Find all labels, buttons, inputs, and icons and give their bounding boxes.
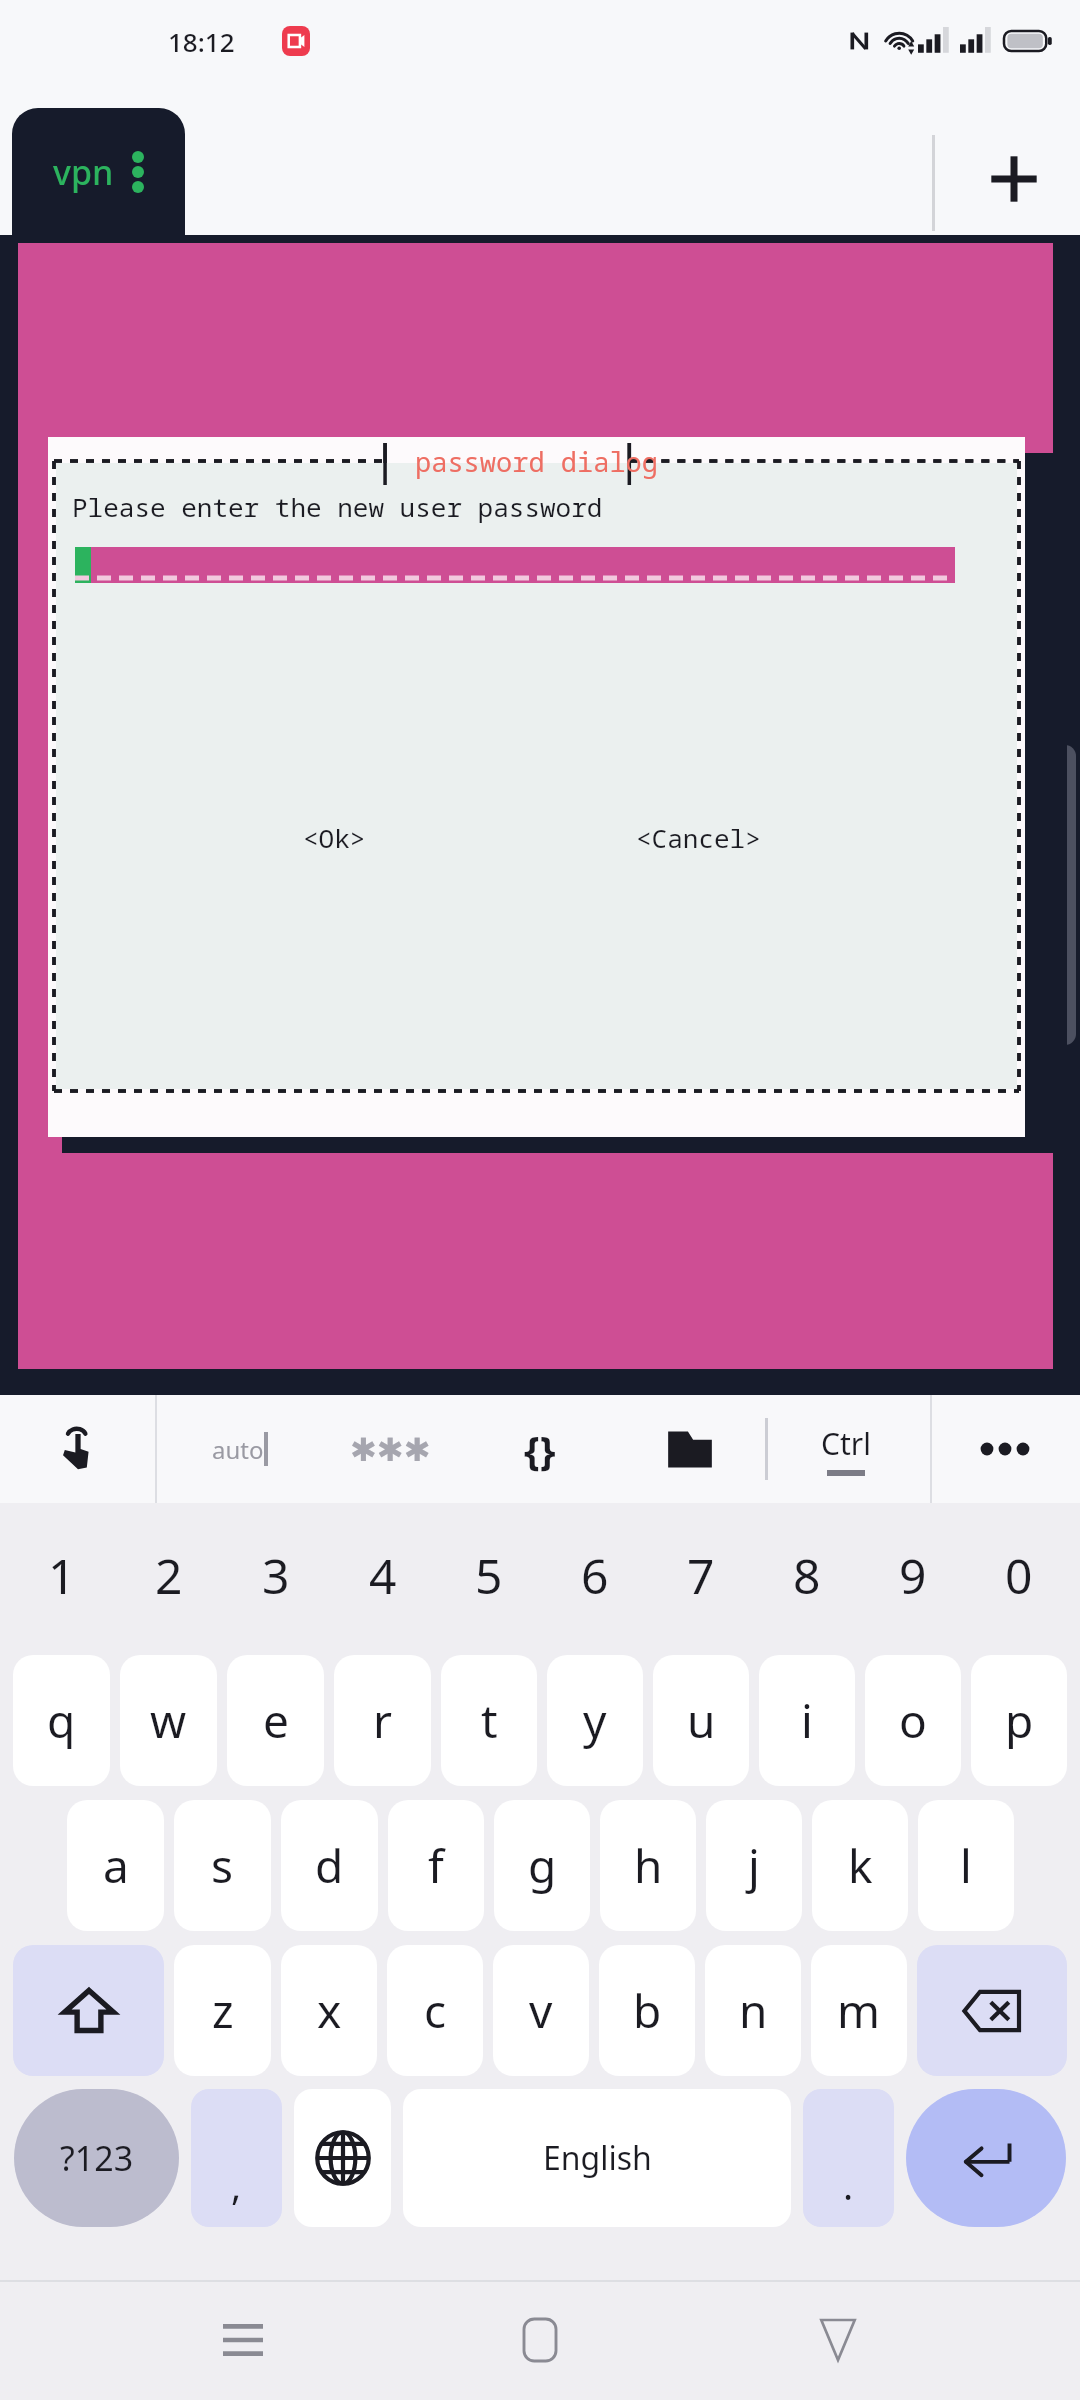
- button[interactable]: r: [334, 1655, 431, 1786]
- staticText: Ctrl: [821, 1423, 871, 1464]
- staticText: y: [583, 1689, 607, 1752]
- staticText: g: [528, 1834, 557, 1897]
- button[interactable]: Home: [485, 2285, 595, 2395]
- button[interactable]: 3: [222, 1503, 329, 1648]
- button[interactable]: 5: [436, 1503, 542, 1648]
- staticText: 3: [262, 1543, 290, 1608]
- button[interactable]: Backspace: [917, 1945, 1067, 2076]
- button[interactable]: c: [387, 1945, 483, 2076]
- button[interactable]: v: [493, 1945, 589, 2076]
- button[interactable]: Recent apps: [188, 2285, 298, 2395]
- button[interactable]: x: [281, 1945, 377, 2076]
- staticText: x: [317, 1979, 342, 2042]
- staticText: <Cancel>: [636, 820, 761, 855]
- button[interactable]: p: [971, 1655, 1067, 1786]
- staticText: e: [263, 1689, 289, 1752]
- button[interactable]: vpn: [12, 108, 185, 235]
- staticText: auto: [212, 1433, 264, 1466]
- staticText: 1: [48, 1543, 76, 1608]
- button[interactable]: auto: [165, 1395, 315, 1503]
- staticText: {}: [524, 1422, 556, 1476]
- staticText: u: [687, 1689, 716, 1752]
- button[interactable]: a: [67, 1800, 164, 1931]
- button[interactable]: 8: [754, 1503, 860, 1648]
- button[interactable]: <Ok>: [303, 820, 366, 855]
- button[interactable]: Back: [783, 2285, 893, 2395]
- button[interactable]: 6: [542, 1503, 648, 1648]
- button[interactable]: 7: [648, 1503, 754, 1648]
- staticText: ,: [231, 2159, 242, 2211]
- staticText: n: [739, 1979, 768, 2042]
- button[interactable]: q: [13, 1655, 110, 1786]
- staticText: English: [543, 2136, 652, 2180]
- button[interactable]: 2: [115, 1503, 222, 1648]
- staticText: a: [103, 1834, 129, 1897]
- button[interactable]: i: [759, 1655, 855, 1786]
- button[interactable]: z: [174, 1945, 271, 2076]
- staticText: m: [837, 1979, 881, 2042]
- staticText: p: [1005, 1689, 1034, 1752]
- button[interactable]: 1: [8, 1503, 115, 1648]
- button[interactable]: More options: [930, 1395, 1080, 1503]
- staticText: ?123: [60, 2135, 134, 2181]
- button[interactable]: j: [706, 1800, 802, 1931]
- button[interactable]: Shift: [13, 1945, 164, 2076]
- staticText: 4: [369, 1543, 397, 1608]
- staticText: w: [150, 1689, 187, 1752]
- staticText: .: [843, 2159, 854, 2211]
- button[interactable]: g: [494, 1800, 590, 1931]
- button[interactable]: ,: [191, 2089, 282, 2227]
- staticText: z: [212, 1979, 234, 2042]
- button[interactable]: n: [705, 1945, 801, 2076]
- staticText: f: [428, 1834, 444, 1897]
- button[interactable]: u: [653, 1655, 749, 1786]
- button[interactable]: 4: [329, 1503, 436, 1648]
- button[interactable]: Change language: [294, 2089, 391, 2227]
- staticText: 7: [687, 1543, 715, 1608]
- staticText: 5: [475, 1543, 503, 1608]
- button[interactable]: k: [812, 1800, 908, 1931]
- staticText: o: [899, 1689, 927, 1752]
- button[interactable]: y: [547, 1655, 643, 1786]
- button[interactable]: ?123: [14, 2089, 179, 2227]
- staticText: i: [801, 1689, 813, 1752]
- button[interactable]: <Cancel>: [636, 820, 761, 855]
- button[interactable]: m: [811, 1945, 907, 2076]
- button[interactable]: o: [865, 1655, 961, 1786]
- staticText: r: [373, 1689, 392, 1752]
- button[interactable]: l: [918, 1800, 1014, 1931]
- staticText: 9: [899, 1543, 927, 1608]
- staticText: 0: [1005, 1543, 1033, 1608]
- button[interactable]: Touch mode: [0, 1395, 155, 1503]
- button[interactable]: English: [403, 2089, 791, 2227]
- staticText: j: [748, 1834, 760, 1897]
- staticText: 2: [155, 1543, 183, 1608]
- button[interactable]: s: [174, 1800, 271, 1931]
- button[interactable]: .: [803, 2089, 894, 2227]
- staticText: l: [960, 1834, 972, 1897]
- button[interactable]: t: [441, 1655, 537, 1786]
- button[interactable]: Ctrl: [768, 1395, 923, 1503]
- button[interactable]: 0: [966, 1503, 1072, 1648]
- button[interactable]: Braces: [465, 1395, 615, 1503]
- staticText: d: [315, 1834, 344, 1897]
- button[interactable]: Files: [615, 1395, 765, 1503]
- staticText: 18:12: [168, 24, 235, 59]
- staticText: b: [633, 1979, 662, 2042]
- button[interactable]: Password: [315, 1395, 465, 1503]
- button[interactable]: b: [599, 1945, 695, 2076]
- button[interactable]: w: [120, 1655, 217, 1786]
- button[interactable]: 9: [860, 1503, 966, 1648]
- staticText: 6: [581, 1543, 609, 1608]
- staticText: ✱✱✱: [350, 1431, 431, 1468]
- button[interactable]: Enter: [906, 2089, 1066, 2227]
- staticText: s: [211, 1834, 234, 1897]
- button[interactable]: f: [388, 1800, 484, 1931]
- staticText: t: [481, 1689, 498, 1752]
- button[interactable]: New session: [966, 131, 1062, 227]
- button[interactable]: e: [227, 1655, 324, 1786]
- button[interactable]: h: [600, 1800, 696, 1931]
- staticText: q: [47, 1689, 76, 1752]
- staticText: k: [848, 1834, 873, 1897]
- button[interactable]: d: [281, 1800, 378, 1931]
